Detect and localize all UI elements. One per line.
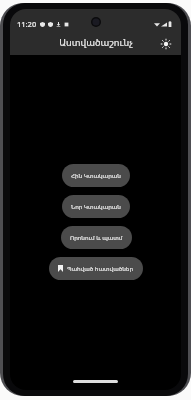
- button[interactable]: Toggle theme: [157, 35, 175, 53]
- button[interactable]: Պահված հատվածներ: [49, 257, 143, 280]
- staticText: Նոր Կտակարան: [71, 203, 121, 211]
- staticText: Որոնում և պատմ: [70, 234, 123, 242]
- button[interactable]: Նոր Կտակարան: [62, 195, 130, 218]
- button[interactable]: Հին Կտակարան: [62, 164, 130, 187]
- staticText: Հին Կտակարան: [71, 172, 121, 180]
- button[interactable]: Որոնում և պատմ: [61, 226, 132, 249]
- staticText: 11:20: [17, 19, 37, 29]
- staticText: Աստվածաշունչ: [59, 38, 133, 48]
- staticText: Պահված հատվածներ: [67, 265, 134, 273]
